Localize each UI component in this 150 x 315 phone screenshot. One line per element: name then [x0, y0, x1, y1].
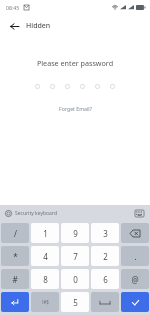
- staticText: /: [14, 228, 17, 239]
- staticText: Hidden: [26, 21, 51, 31]
- button[interactable]: 5: [61, 292, 89, 312]
- button[interactable]: 8: [31, 269, 59, 289]
- staticText: 4: [43, 251, 48, 262]
- staticText: @: [131, 274, 139, 285]
- button[interactable]: Return: [1, 292, 29, 312]
- staticText: !#$: [42, 299, 49, 305]
- staticText: Forget Email?: [59, 105, 92, 112]
- button[interactable]: 1: [31, 223, 59, 243]
- button[interactable]: 6: [91, 269, 119, 289]
- staticText: 08:45: [6, 4, 20, 11]
- staticText: 2: [103, 251, 108, 262]
- staticText: 9: [73, 228, 78, 239]
- staticText: *: [13, 251, 18, 262]
- button[interactable]: /: [1, 223, 29, 243]
- staticText: 6: [103, 274, 108, 285]
- button[interactable]: 7: [61, 246, 89, 266]
- staticText: 1: [43, 228, 48, 239]
- button[interactable]: Switch keyboard: [134, 208, 145, 219]
- button[interactable]: Space: [91, 292, 119, 312]
- button[interactable]: 4: [31, 246, 59, 266]
- staticText: Please enter password: [0, 58, 150, 68]
- button[interactable]: Confirm: [121, 292, 149, 312]
- staticText: 3: [103, 228, 108, 239]
- button[interactable]: !#$: [31, 292, 59, 312]
- button[interactable]: 2: [91, 246, 119, 266]
- button[interactable]: Back: [4, 16, 24, 36]
- button[interactable]: *: [1, 246, 29, 266]
- button[interactable]: @: [121, 269, 149, 289]
- staticText: 7: [73, 251, 78, 262]
- staticText: .: [134, 251, 137, 262]
- staticText: 5: [73, 297, 78, 308]
- staticText: 0: [73, 274, 78, 285]
- button[interactable]: Backspace: [121, 223, 149, 243]
- button[interactable]: 0: [61, 269, 89, 289]
- button[interactable]: 9: [61, 223, 89, 243]
- staticText: Security keyboard: [15, 210, 57, 217]
- button[interactable]: Forget Email?: [53, 103, 98, 114]
- button[interactable]: .: [121, 246, 149, 266]
- staticText: #: [12, 274, 18, 285]
- button[interactable]: #: [1, 269, 29, 289]
- button[interactable]: 3: [91, 223, 119, 243]
- staticText: 8: [43, 274, 48, 285]
